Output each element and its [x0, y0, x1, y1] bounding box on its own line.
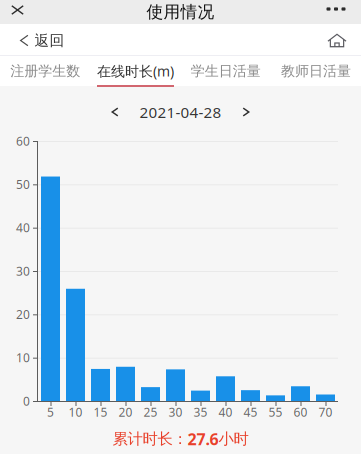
staticText: 累计时长： [112, 429, 187, 449]
staticText: 2021-04-28 [139, 102, 221, 122]
button[interactable]: More [318, 0, 354, 19]
staticText: 25 [143, 404, 157, 420]
staticText: 20 [16, 306, 30, 322]
staticText: 0 [23, 393, 30, 409]
staticText: 使用情况 [146, 1, 214, 22]
staticText: 45 [243, 404, 257, 420]
staticText: 60 [16, 133, 30, 149]
staticText: 70 [318, 404, 332, 420]
staticText: 学生日活量 [191, 62, 261, 80]
staticText: 15 [93, 404, 107, 420]
button[interactable]: 返回 [0, 25, 76, 56]
staticText: 返回 [34, 31, 64, 50]
staticText: 50 [16, 176, 30, 192]
staticText: 10 [68, 404, 82, 420]
staticText: 35 [193, 404, 207, 420]
staticText: 在线时长(m) [97, 61, 174, 81]
button[interactable]: Previous day [90, 98, 139, 126]
staticText: 27.6 [187, 428, 218, 450]
staticText: 10 [16, 349, 30, 366]
button[interactable]: 在线时长(m) [90, 57, 180, 85]
staticText: 20 [118, 404, 132, 420]
button[interactable]: Next day [221, 98, 270, 126]
staticText: 教师日活量 [281, 62, 351, 80]
staticText: 55 [268, 404, 282, 420]
button[interactable]: Close [0, 0, 36, 20]
staticText: 40 [218, 404, 232, 420]
staticText: 40 [16, 219, 30, 236]
staticText: 30 [16, 263, 30, 279]
button[interactable]: 教师日活量 [271, 57, 361, 85]
staticText: 小时 [218, 429, 248, 449]
button[interactable]: 学生日活量 [180, 57, 271, 85]
button[interactable]: 注册学生数 [0, 57, 90, 85]
staticText: 5 [47, 404, 54, 420]
staticText: 30 [168, 404, 182, 420]
staticText: 60 [293, 404, 307, 420]
button[interactable]: Home [318, 25, 356, 56]
staticText: 注册学生数 [10, 62, 80, 80]
